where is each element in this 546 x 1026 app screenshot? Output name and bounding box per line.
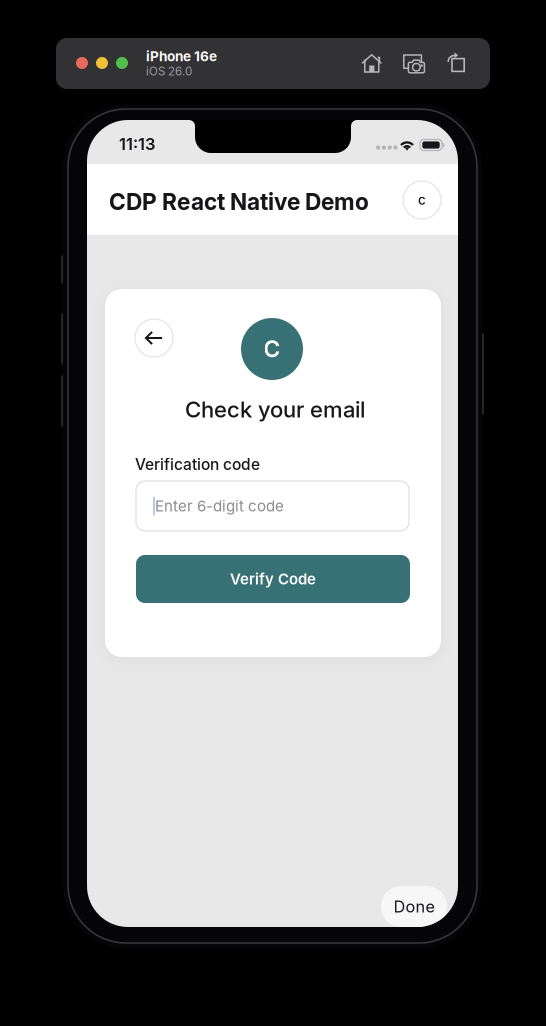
button[interactable]: Account bbox=[403, 181, 441, 219]
staticText: C bbox=[263, 335, 280, 363]
button[interactable]: Close bbox=[76, 57, 88, 69]
staticText: Check your email bbox=[185, 396, 365, 423]
button[interactable]: Screenshot bbox=[403, 54, 426, 74]
button[interactable]: Minimize bbox=[96, 57, 108, 69]
button[interactable]: Done bbox=[381, 886, 447, 927]
button[interactable]: Back bbox=[135, 319, 173, 357]
staticText: Enter 6-digit code bbox=[155, 497, 284, 515]
button[interactable]: Share bbox=[447, 52, 465, 72]
staticText: Verification code bbox=[135, 455, 260, 474]
button[interactable]: Home bbox=[361, 52, 383, 72]
staticText: Verify Code bbox=[230, 570, 316, 588]
button[interactable]: Verify Code bbox=[136, 555, 410, 603]
staticText: c bbox=[418, 192, 426, 208]
staticText: iPhone 16e bbox=[146, 48, 217, 64]
staticText: CDP React Native Demo bbox=[109, 188, 369, 215]
button[interactable]: Zoom bbox=[116, 57, 128, 69]
staticText: iOS 26.0 bbox=[146, 64, 192, 78]
staticText: 11:13 bbox=[119, 134, 155, 154]
staticText: Done bbox=[393, 897, 434, 916]
